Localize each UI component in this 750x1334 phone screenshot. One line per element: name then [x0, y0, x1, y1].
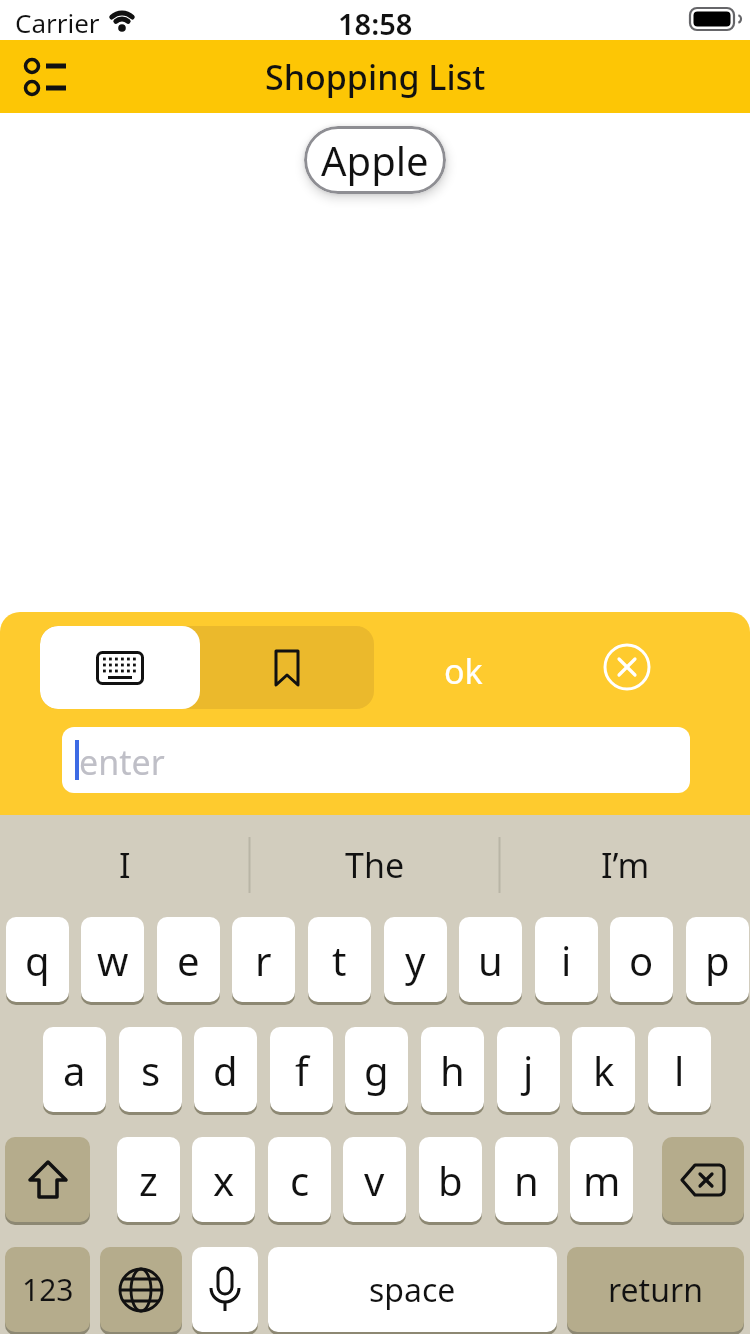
- button[interactable]: I’m: [500, 815, 750, 915]
- button[interactable]: [5, 1137, 90, 1225]
- button[interactable]: [192, 1247, 258, 1334]
- button[interactable]: enter: [62, 727, 690, 793]
- button[interactable]: i: [535, 917, 598, 1005]
- staticText: space: [369, 1268, 456, 1312]
- button[interactable]: Apple: [304, 126, 446, 194]
- staticText: Carrier: [15, 5, 100, 40]
- button[interactable]: z: [117, 1137, 180, 1225]
- staticText: return: [608, 1268, 703, 1312]
- staticText: w: [97, 933, 129, 987]
- button[interactable]: v: [343, 1137, 406, 1225]
- button[interactable]: p: [686, 917, 749, 1005]
- staticText: j: [523, 1043, 534, 1097]
- staticText: The: [345, 842, 405, 888]
- staticText: d: [213, 1043, 238, 1097]
- button[interactable]: c: [268, 1137, 331, 1225]
- staticText: g: [364, 1043, 389, 1097]
- staticText: a: [63, 1043, 86, 1097]
- staticText: b: [438, 1153, 463, 1207]
- staticText: Apple: [321, 133, 429, 187]
- staticText: h: [440, 1043, 465, 1097]
- button[interactable]: r: [232, 917, 295, 1005]
- button[interactable]: [662, 1137, 744, 1225]
- button[interactable]: o: [610, 917, 673, 1005]
- staticText: c: [290, 1153, 310, 1207]
- staticText: k: [593, 1043, 615, 1097]
- button[interactable]: y: [384, 917, 447, 1005]
- staticText: z: [139, 1153, 158, 1207]
- button[interactable]: 123: [5, 1247, 90, 1334]
- staticText: x: [213, 1153, 235, 1207]
- button[interactable]: s: [119, 1027, 182, 1115]
- button[interactable]: j: [497, 1027, 560, 1115]
- button[interactable]: d: [194, 1027, 257, 1115]
- button[interactable]: m: [570, 1137, 633, 1225]
- button[interactable]: [200, 626, 374, 709]
- staticText: l: [674, 1043, 685, 1097]
- button[interactable]: [603, 643, 651, 691]
- staticText: p: [705, 933, 730, 987]
- button[interactable]: return: [567, 1247, 744, 1334]
- button[interactable]: e: [157, 917, 220, 1005]
- staticText: y: [405, 933, 426, 987]
- staticText: u: [478, 933, 503, 987]
- staticText: m: [583, 1153, 621, 1207]
- staticText: I: [119, 842, 131, 888]
- button[interactable]: n: [495, 1137, 558, 1225]
- staticText: i: [561, 933, 572, 987]
- button[interactable]: k: [572, 1027, 635, 1115]
- button[interactable]: I: [0, 815, 250, 915]
- button[interactable]: [40, 626, 200, 709]
- staticText: 123: [22, 1269, 74, 1310]
- button[interactable]: [100, 1247, 182, 1334]
- staticText: Shopping List: [265, 54, 486, 100]
- staticText: s: [141, 1043, 161, 1097]
- staticText: r: [255, 933, 272, 987]
- button[interactable]: f: [270, 1027, 333, 1115]
- button[interactable]: a: [43, 1027, 106, 1115]
- staticText: e: [177, 933, 200, 987]
- button[interactable]: u: [459, 917, 522, 1005]
- staticText: enter: [79, 739, 165, 785]
- button[interactable]: space: [268, 1247, 557, 1334]
- button[interactable]: b: [419, 1137, 482, 1225]
- button[interactable]: g: [345, 1027, 408, 1115]
- staticText: 18:58: [338, 4, 413, 43]
- button[interactable]: x: [192, 1137, 255, 1225]
- button[interactable]: ok: [444, 648, 483, 694]
- staticText: v: [364, 1153, 385, 1207]
- staticText: f: [295, 1043, 309, 1097]
- button[interactable]: The: [250, 815, 500, 915]
- button[interactable]: t: [308, 917, 371, 1005]
- staticText: t: [332, 933, 347, 987]
- button[interactable]: l: [648, 1027, 711, 1115]
- button[interactable]: h: [421, 1027, 484, 1115]
- button[interactable]: q: [6, 917, 69, 1005]
- staticText: o: [629, 933, 654, 987]
- button[interactable]: w: [81, 917, 144, 1005]
- button[interactable]: [14, 52, 78, 102]
- staticText: I’m: [601, 842, 650, 888]
- staticText: q: [25, 933, 50, 987]
- staticText: n: [514, 1153, 539, 1207]
